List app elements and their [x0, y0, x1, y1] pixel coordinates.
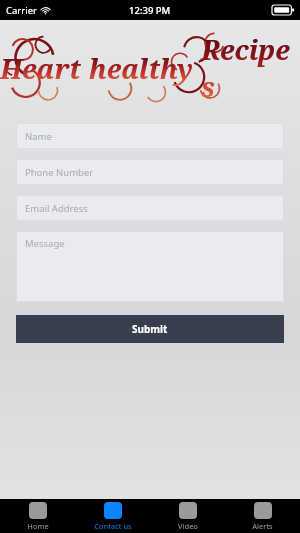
button[interactable]: Message: [16, 231, 284, 302]
button[interactable]: Video: [150, 499, 225, 533]
staticText: Name: [25, 130, 52, 143]
staticText: Email Address: [25, 202, 88, 215]
button[interactable]: Submit: [16, 315, 284, 343]
staticText: 12:39 PM: [129, 4, 171, 17]
button[interactable]: Name: [16, 123, 284, 149]
staticText: Home: [27, 521, 49, 531]
staticText: Alerts: [252, 521, 273, 531]
staticText: Recipes: [201, 31, 300, 105]
staticText: Video: [178, 521, 198, 531]
button[interactable]: Phone Number: [16, 159, 284, 185]
staticText: Message: [25, 237, 65, 250]
staticText: Contact us: [94, 521, 132, 531]
button[interactable]: Email Address: [16, 195, 284, 221]
button[interactable]: Home: [0, 499, 75, 533]
staticText: Heart: [0, 50, 81, 87]
staticText: healthy: [89, 50, 193, 87]
button[interactable]: Alerts: [225, 499, 300, 533]
staticText: Carrier: [6, 4, 37, 17]
staticText: Phone Number: [25, 166, 94, 179]
staticText: Submit: [132, 322, 168, 336]
button[interactable]: Contact us: [75, 499, 150, 533]
